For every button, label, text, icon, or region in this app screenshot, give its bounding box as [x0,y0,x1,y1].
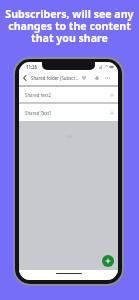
button[interactable]: Back [19,71,29,85]
staticText: 11:26 [26,64,38,70]
button[interactable]: Notifications [92,71,101,85]
button[interactable]: Sort [79,71,88,85]
staticText: Shared text2 [25,92,52,98]
button[interactable]: More options [103,71,112,85]
staticText: Shared Text1 [25,110,52,116]
button[interactable]: Add [102,255,114,267]
button[interactable]: Shared Text1 [19,104,118,121]
button[interactable]: Shared text2 [19,87,118,102]
staticText: Shared folder (Subscr... [31,75,79,81]
staticText: Subscribers, will see any changes to the… [2,7,137,45]
